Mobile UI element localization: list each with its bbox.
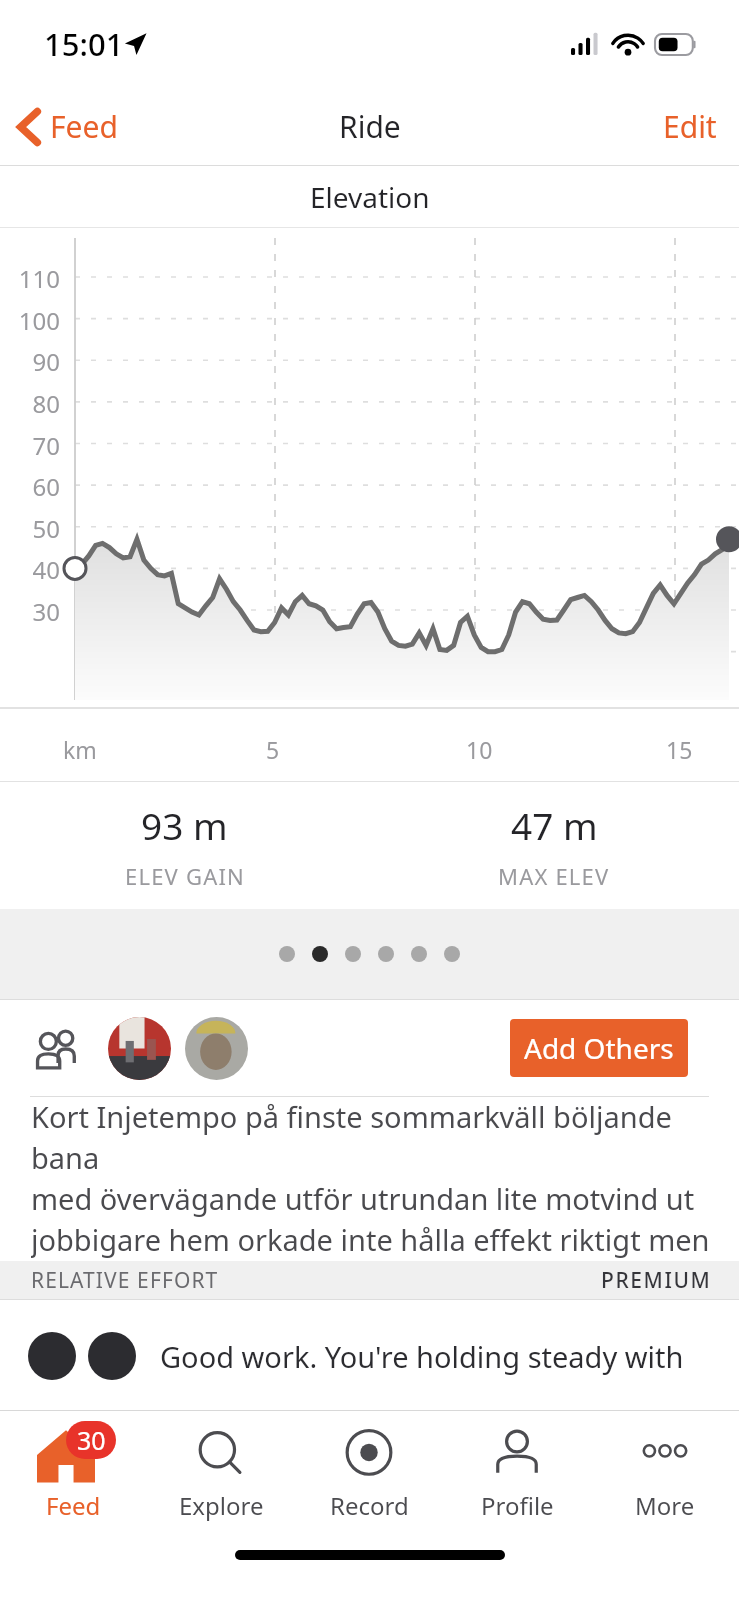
button[interactable]: 47 m [369,782,739,909]
staticText: 80 [0,387,60,420]
staticText: 100 [0,304,60,337]
staticText: ELEV GAIN [125,861,245,891]
button[interactable] [279,946,295,962]
staticText: 50 [0,512,60,545]
staticText: Add Others [524,1029,674,1067]
staticText: MAX ELEV [498,861,610,891]
button[interactable]: Athletes [30,1022,84,1076]
staticText: More [635,1489,695,1522]
staticText: 30 [0,595,60,628]
staticText: Edit [663,106,717,147]
button[interactable]: More [591,1411,739,1542]
staticText: km [63,734,97,765]
staticText: 10 [466,734,493,765]
staticText: Kort Injetempo på finste sommarkväll böl… [31,1097,739,1261]
staticText: 70 [0,429,60,462]
staticText: Profile [481,1489,554,1522]
staticText: Elevation [310,178,430,216]
staticText: 5 [266,734,280,765]
button[interactable]: 30 [0,1411,147,1542]
staticText: Explore [179,1489,264,1522]
staticText: PREMIUM [601,1266,712,1295]
other: Profile [491,1429,543,1481]
button[interactable]: Athlete 2 [185,1017,248,1080]
button[interactable]: 93 m [0,782,369,909]
staticText: 15:01 [44,23,124,65]
button[interactable] [411,946,427,962]
staticText: Feed [46,1489,101,1522]
button[interactable] [378,946,394,962]
other: Record [343,1429,395,1481]
button[interactable]: Record [295,1411,443,1542]
staticText: 60 [0,470,60,503]
other: Explore [195,1429,247,1481]
staticText: 30 [77,1423,106,1457]
button[interactable] [312,946,328,962]
button[interactable] [345,946,361,962]
staticText: Good work. You're holding steady with [160,1337,684,1376]
button[interactable]: Athlete 1 [108,1017,171,1080]
button[interactable]: Add Others [510,1019,688,1077]
button[interactable] [444,946,460,962]
button[interactable]: Feed [0,98,132,155]
staticText: 110 [0,262,60,295]
button[interactable]: Kort Injetempo på finste sommarkväll böl… [0,1097,739,1261]
other: More [635,1429,695,1481]
staticText: 40 [0,553,60,586]
staticText: Ride [339,106,401,147]
button[interactable]: Profile [443,1411,591,1542]
staticText: RELATIVE EFFORT [31,1266,219,1295]
button[interactable]: Edit [641,96,739,157]
staticText: 90 [0,345,60,378]
staticText: 15 [666,734,693,765]
staticText: 93 m [141,800,228,850]
button[interactable]: Explore [147,1411,295,1542]
staticText: 47 m [511,800,598,850]
staticText: Record [330,1489,409,1522]
staticText: Feed [50,106,118,147]
